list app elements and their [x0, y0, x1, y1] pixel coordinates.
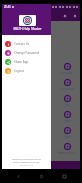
staticText: Utility	[63, 119, 71, 123]
button[interactable]: Accounts	[54, 60, 80, 76]
staticText: Contact Us	[14, 42, 30, 46]
staticText: Tax	[65, 103, 70, 107]
staticText: Change Password	[14, 51, 40, 55]
button[interactable]: Settings	[28, 140, 54, 156]
button[interactable]: Tax	[54, 92, 80, 108]
staticText: Accounts	[61, 71, 73, 75]
button[interactable]: Payments	[28, 60, 54, 76]
button[interactable]: Support	[28, 124, 54, 140]
staticText: Documents	[60, 87, 74, 91]
button[interactable]: Notifications	[62, 13, 67, 18]
staticText: M&TH Help Master	[13, 27, 42, 31]
button[interactable]: Contact Us	[2, 39, 51, 48]
staticText: 20:45	[4, 5, 11, 9]
button[interactable]: Reports	[28, 76, 54, 92]
staticText: Bank Info	[9, 71, 21, 75]
button[interactable]: Back	[13, 171, 23, 181]
button[interactable]: Offers	[54, 124, 80, 140]
staticText: Our Services & Facilities	[3, 41, 44, 46]
button[interactable]: Change Password	[2, 48, 51, 57]
staticText: Booking Form	[58, 151, 76, 155]
button[interactable]: Recents	[59, 171, 69, 181]
button[interactable]: Account	[72, 13, 77, 18]
button[interactable]: Bank Info	[2, 60, 28, 76]
staticText: Logout	[14, 69, 24, 73]
staticText: Share App	[14, 60, 29, 64]
button[interactable]: Booking Form	[54, 140, 80, 156]
button[interactable]: Utility	[54, 108, 80, 124]
button[interactable]: Loans	[28, 92, 54, 108]
button[interactable]: Home	[36, 171, 46, 181]
button[interactable]: Logout	[2, 66, 51, 75]
staticText: Offers	[63, 135, 71, 139]
button[interactable]: Documents	[54, 76, 80, 92]
staticText: Version 1.0.4	[20, 164, 34, 167]
staticText: Welcome back, Rahul Sharma	[3, 23, 48, 27]
staticText: Designed & Developed By	[12, 157, 41, 160]
staticText: M&TH Solutions Pvt Ltd	[13, 160, 40, 163]
button[interactable]: Insurance	[28, 108, 54, 124]
button[interactable]: Share App	[2, 57, 51, 66]
